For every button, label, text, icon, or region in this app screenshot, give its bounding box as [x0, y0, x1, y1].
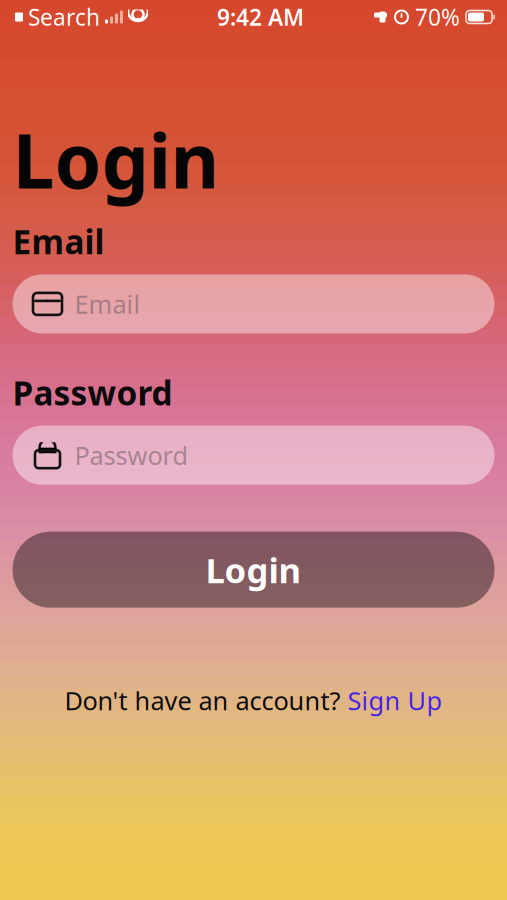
staticText: Login: [12, 110, 219, 209]
staticText: Don't have an account?: [64, 684, 347, 717]
staticText: Search: [28, 2, 100, 32]
staticText: Email: [12, 219, 104, 263]
staticText: 70%: [415, 2, 460, 32]
staticText: 9:42 AM: [217, 2, 304, 32]
staticText: Sign Up: [347, 684, 442, 717]
staticText: Password: [74, 438, 188, 472]
staticText: Login: [205, 547, 301, 593]
staticText: Email: [74, 287, 140, 321]
staticText: Password: [12, 370, 172, 415]
button[interactable]: Sign Up: [347, 684, 442, 717]
button[interactable]: Login: [12, 532, 494, 608]
